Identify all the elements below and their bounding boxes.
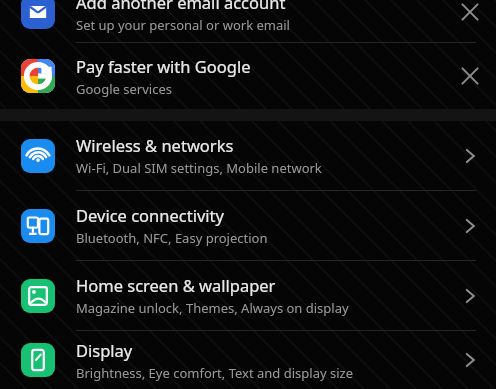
staticText: Magazine unlock, Themes, Always on displ… (76, 299, 349, 317)
staticText: Bluetooth, NFC, Easy projection (76, 229, 268, 247)
staticText: Google services (76, 80, 172, 98)
button[interactable]: Device connectivity (0, 191, 496, 260)
staticText: Brightness, Eye comfort, Text and displa… (76, 364, 353, 382)
button[interactable]: Display (0, 331, 496, 389)
staticText: Wireless & networks (76, 134, 234, 156)
button[interactable]: Dismiss (448, 54, 492, 98)
staticText: Home screen & wallpaper (76, 274, 276, 296)
staticText: Device connectivity (76, 204, 224, 226)
staticText: Display (76, 339, 133, 361)
staticText: Wi-Fi, Dual SIM settings, Mobile network (76, 159, 322, 177)
button[interactable]: Add another email account (0, 0, 496, 42)
staticText: Pay faster with Google (76, 55, 251, 77)
staticText: Add another email account (76, 0, 286, 13)
staticText: Set up your personal or work email (76, 16, 290, 33)
button[interactable]: Home screen & wallpaper (0, 261, 496, 330)
button[interactable]: Dismiss (448, 0, 492, 33)
button[interactable]: Pay faster with Google (0, 43, 496, 109)
button[interactable]: Wireless & networks (0, 121, 496, 190)
